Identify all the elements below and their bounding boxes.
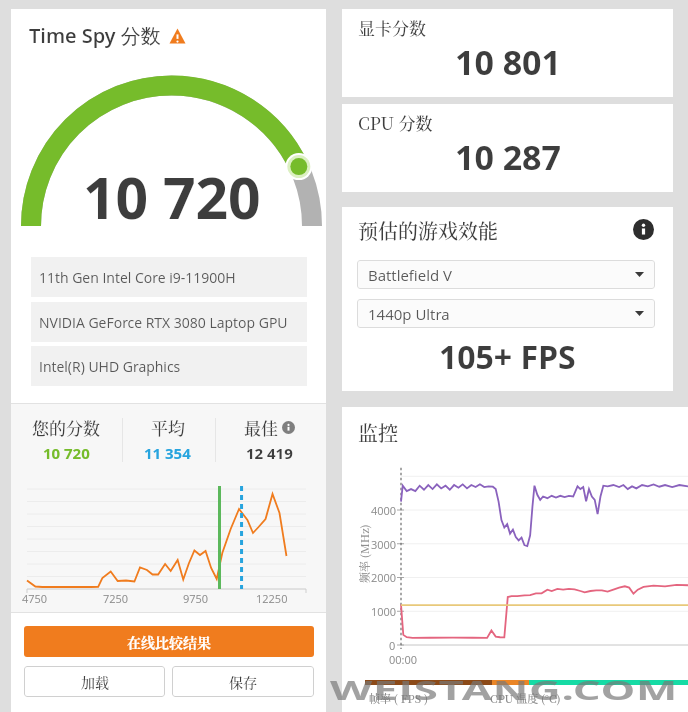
staticText: Time Spy 分数 <box>29 22 161 49</box>
button[interactable]: Info <box>282 421 295 434</box>
button[interactable]: 加载 <box>24 666 165 697</box>
staticText: 帧率 ( FPS ) <box>369 690 429 706</box>
staticText: 监控 <box>358 418 398 447</box>
staticText: 平均 <box>151 415 185 439</box>
staticText: 00:00 <box>389 652 418 667</box>
staticText: 10 720 <box>83 158 261 236</box>
staticText: 12250 <box>256 591 288 606</box>
staticText: 11 354 <box>144 443 191 463</box>
staticText: 频率 (MHz) <box>356 524 372 583</box>
staticText: 9750 <box>183 591 209 606</box>
staticText: 11th Gen Intel Core i9-11900H <box>39 268 236 287</box>
staticText: 10 801 <box>455 39 561 85</box>
staticText: 保存 <box>229 672 257 692</box>
staticText: 3000 <box>371 537 397 552</box>
staticText: 显卡分数 <box>358 15 426 39</box>
button[interactable]: 在线比较结果 <box>24 626 314 657</box>
staticText: Intel(R) UHD Graphics <box>39 357 181 376</box>
staticText: 4000 <box>371 503 397 518</box>
button[interactable]: 1440p Ultra <box>357 299 655 328</box>
staticText: 4750 <box>22 591 48 606</box>
staticText: 10 720 <box>43 443 90 463</box>
button[interactable]: NVIDIA GeForce RTX 3080 Laptop GPU <box>31 302 307 342</box>
button[interactable]: Battlefield V <box>357 260 655 289</box>
staticText: 1440p Ultra <box>368 304 450 324</box>
button[interactable]: Info <box>633 219 654 240</box>
staticText: 1000 <box>371 604 397 619</box>
staticText: 最佳 <box>244 415 278 439</box>
staticText: Battlefield V <box>368 265 452 285</box>
staticText: 2000 <box>371 570 397 585</box>
staticText: 105+ FPS <box>439 335 576 379</box>
button[interactable]: 保存 <box>172 666 314 697</box>
staticText: 预估的游戏效能 <box>358 216 498 245</box>
button[interactable]: Intel(R) UHD Graphics <box>31 346 307 386</box>
staticText: CPU 温度 (°C) <box>490 690 561 706</box>
staticText: 12 419 <box>246 443 293 463</box>
staticText: 您的分数 <box>32 415 100 439</box>
staticText: 在线比较结果 <box>127 632 211 652</box>
staticText: 7250 <box>103 591 129 606</box>
staticText: NVIDIA GeForce RTX 3080 Laptop GPU <box>39 313 288 332</box>
staticText: 10 287 <box>455 134 561 180</box>
staticText: WEISTANG.COM <box>330 671 688 708</box>
button[interactable]: 11th Gen Intel Core i9-11900H <box>31 257 307 297</box>
staticText: CPU 分数 <box>358 110 433 134</box>
staticText: 0 <box>389 638 396 653</box>
staticText: 加载 <box>81 672 109 692</box>
